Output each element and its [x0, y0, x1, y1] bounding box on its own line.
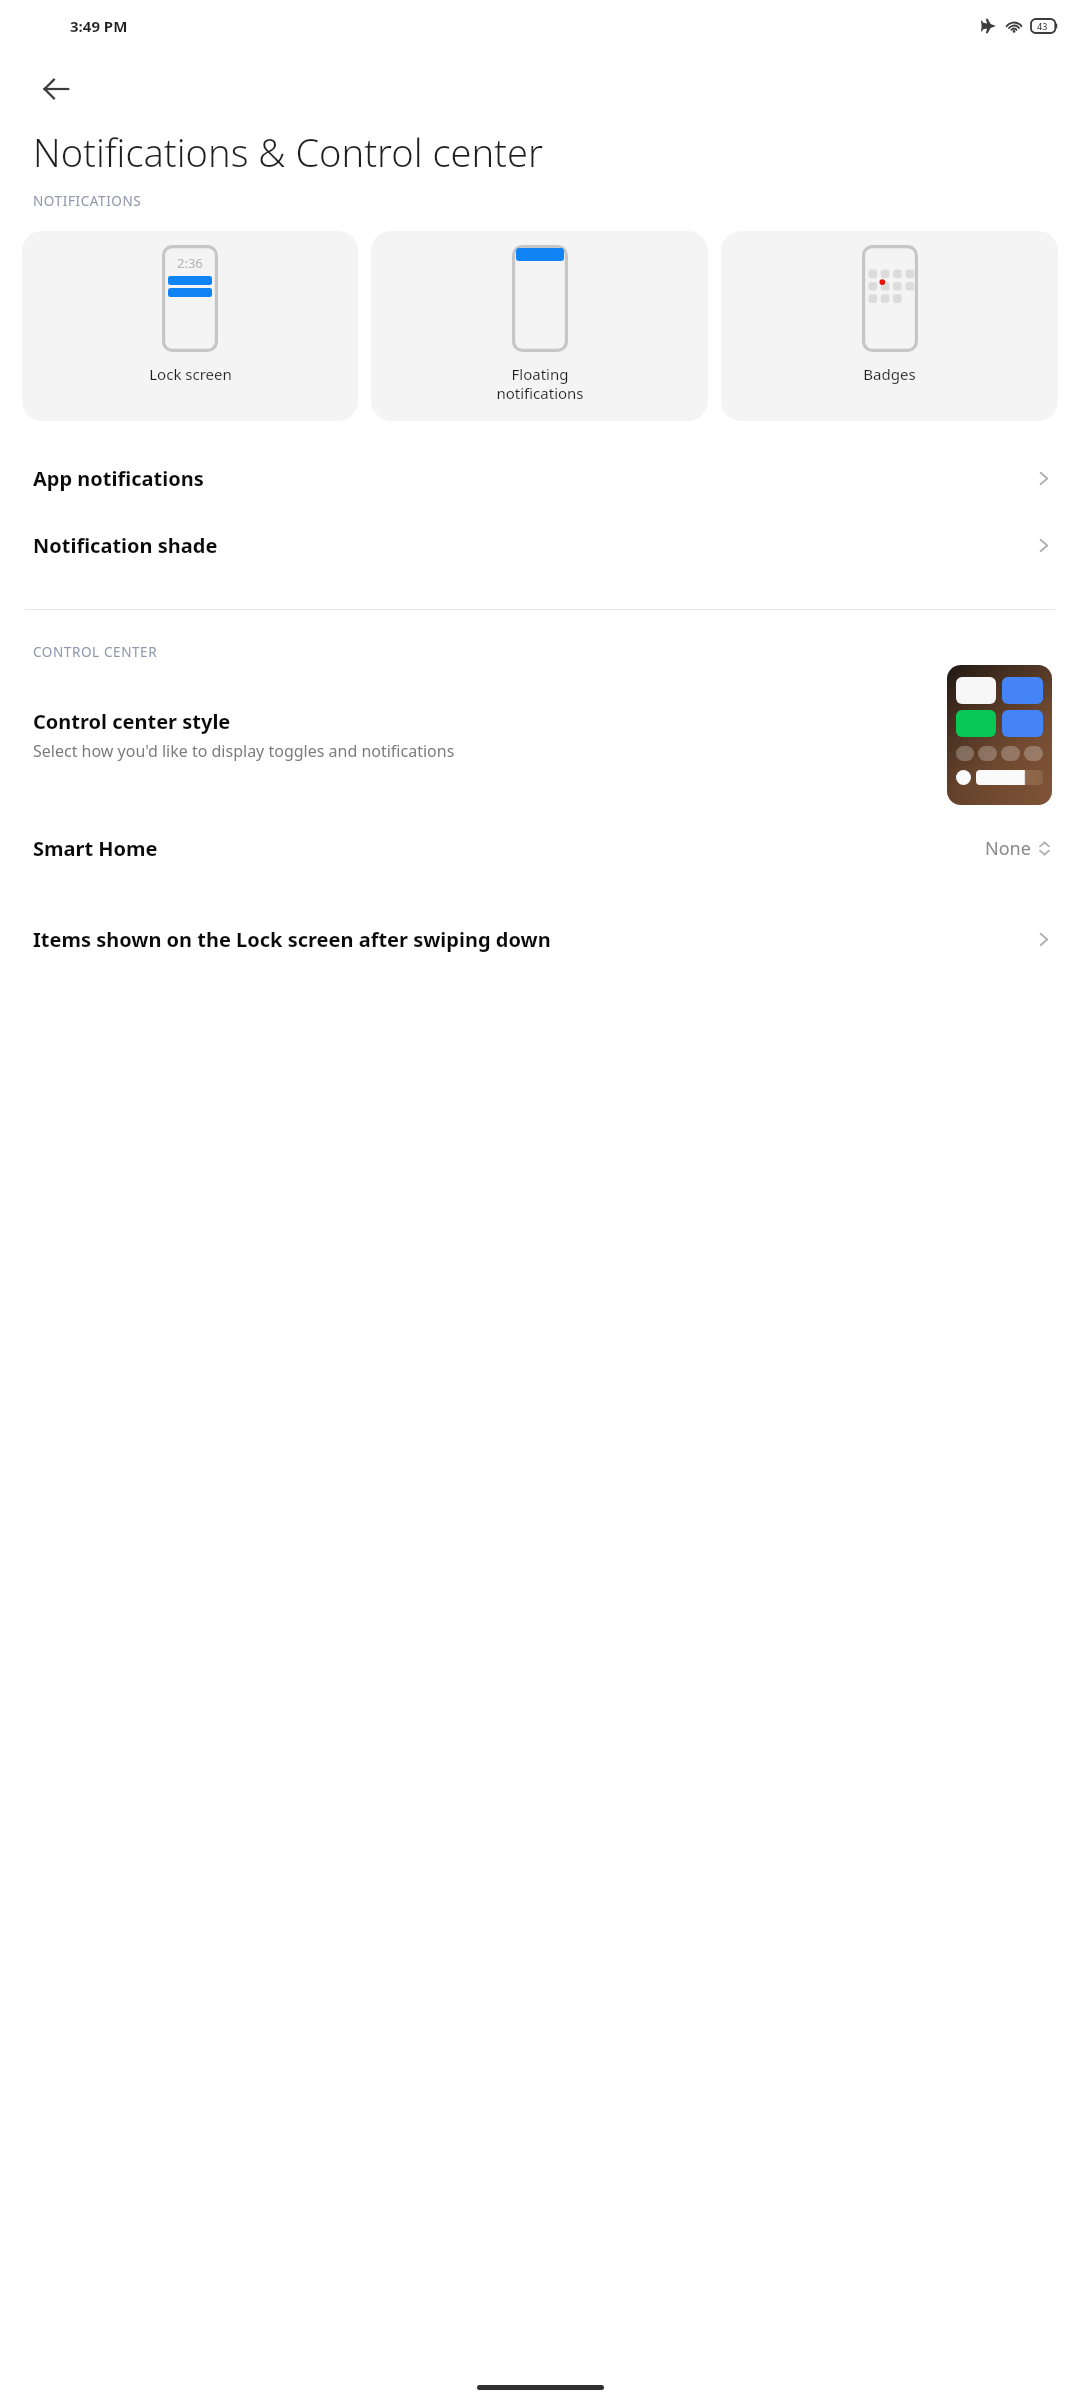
- staticText: Items shown on the Lock screen after swi…: [33, 926, 1011, 953]
- staticText: 3:49 PM: [70, 16, 128, 36]
- button[interactable]: App notifications: [0, 445, 1080, 512]
- button[interactable]: Control center style: [0, 661, 1080, 809]
- staticText: Select how you'd like to display toggles…: [33, 740, 455, 762]
- staticText: Lock screen: [149, 364, 232, 384]
- staticText: CONTROL CENTER: [33, 643, 158, 661]
- button[interactable]: Badges: [721, 231, 1058, 421]
- staticText: App notifications: [33, 465, 1011, 492]
- staticText: Floating notifications: [496, 364, 584, 403]
- button[interactable]: Notification shade: [0, 512, 1080, 579]
- button[interactable]: Smart Home: [0, 809, 1080, 887]
- button[interactable]: Back: [28, 61, 84, 117]
- staticText: NOTIFICATIONS: [33, 192, 142, 210]
- staticText: Notifications & Control center: [33, 126, 543, 178]
- staticText: Smart Home: [33, 835, 985, 862]
- staticText: Badges: [863, 364, 916, 384]
- button[interactable]: Floating notifications: [371, 231, 708, 421]
- staticText: 2:36: [177, 254, 203, 272]
- staticText: Control center style: [33, 708, 231, 735]
- staticText: None: [985, 836, 1031, 861]
- staticText: 43: [1037, 20, 1048, 32]
- button[interactable]: 2:36: [22, 231, 358, 421]
- staticText: Notification shade: [33, 532, 1011, 559]
- button[interactable]: Items shown on the Lock screen after swi…: [0, 887, 1080, 991]
